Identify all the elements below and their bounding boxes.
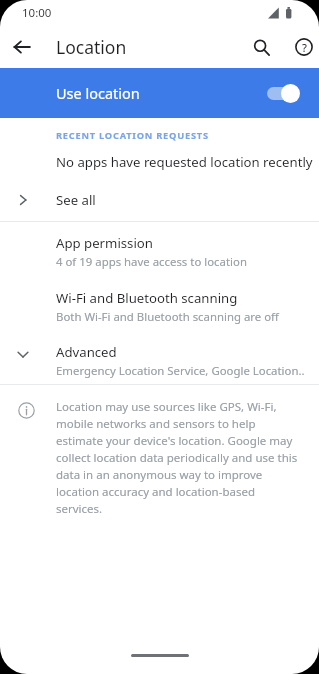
- button[interactable]: Use location: [0, 68, 319, 118]
- staticText: RECENT LOCATION REQUESTS: [56, 129, 209, 142]
- button[interactable]: Search: [245, 31, 277, 63]
- staticText: Emergency Location Service, Google Locat…: [56, 363, 305, 379]
- staticText: ?: [302, 40, 307, 55]
- staticText: 10:00: [22, 5, 52, 21]
- staticText: See all: [56, 191, 96, 209]
- button[interactable]: Advanced: [0, 334, 319, 384]
- staticText: 4 of 19 apps have access to location: [56, 254, 247, 270]
- button[interactable]: Help: [288, 31, 319, 63]
- staticText: Use location: [56, 83, 140, 103]
- button[interactable]: App permission: [0, 222, 319, 279]
- button[interactable]: Back: [6, 31, 38, 63]
- button[interactable]: No apps have requested location recently: [0, 142, 319, 181]
- staticText: Both Wi-Fi and Bluetooth scanning are of…: [56, 309, 279, 325]
- staticText: Wi-Fi and Bluetooth scanning: [56, 289, 238, 307]
- staticText: Location may use sources like GPS, Wi-Fi…: [56, 399, 300, 516]
- button[interactable]: See all: [0, 181, 319, 219]
- staticText: No apps have requested location recently: [56, 153, 313, 171]
- button[interactable]: Wi-Fi and Bluetooth scanning: [0, 279, 319, 334]
- staticText: Location: [56, 35, 127, 59]
- staticText: App permission: [56, 234, 153, 252]
- staticText: Advanced: [56, 343, 117, 361]
